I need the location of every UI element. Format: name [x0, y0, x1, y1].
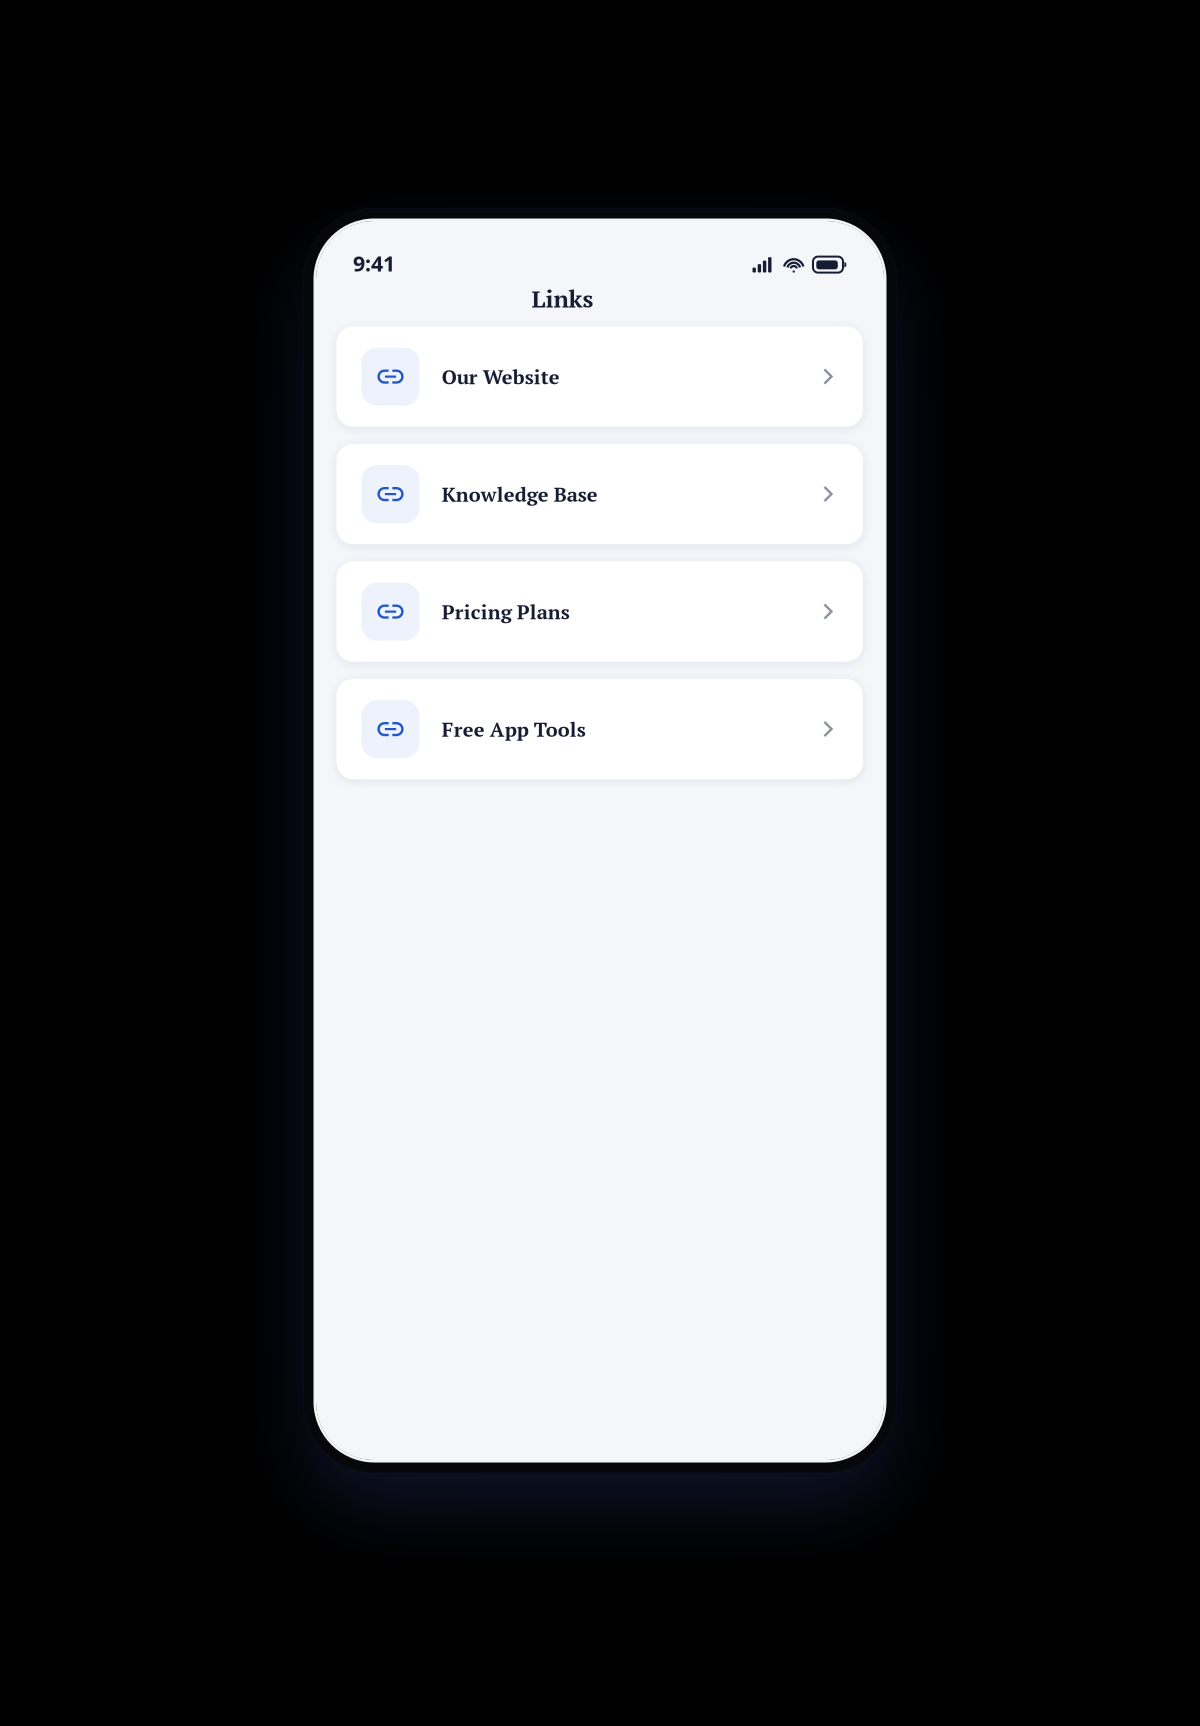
button[interactable]: Pricing Plans: [336, 561, 863, 662]
staticText: 9:41: [353, 249, 395, 277]
staticText: Links: [531, 282, 593, 314]
button[interactable]: Our Website: [336, 326, 863, 427]
staticText: Pricing Plans: [442, 598, 570, 625]
staticText: Free App Tools: [442, 716, 586, 742]
staticText: Knowledge Base: [442, 481, 598, 507]
staticText: Our Website: [442, 363, 560, 390]
button[interactable]: Knowledge Base: [336, 444, 863, 544]
button[interactable]: Free App Tools: [336, 679, 863, 779]
